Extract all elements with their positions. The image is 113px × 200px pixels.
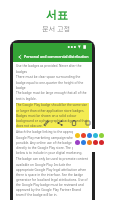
button[interactable]: Share — [55, 118, 64, 127]
button[interactable]: Colour — [99, 140, 104, 145]
staticText: Use the badges as provided. Never alter … — [16, 64, 89, 74]
button[interactable]: Colour — [99, 133, 104, 138]
button[interactable]: Back — [15, 52, 24, 61]
button[interactable]: Highlight — [41, 118, 50, 127]
button[interactable]: Colour — [75, 133, 80, 138]
staticText: The Google Play badge should be the same… — [16, 103, 89, 128]
button[interactable]: Colour — [81, 133, 86, 138]
button[interactable]: Colour — [81, 140, 86, 145]
staticText: 문서 고정 — [42, 24, 71, 33]
staticText: The badge can only be used to promote co… — [16, 157, 89, 197]
button[interactable]: Colour — [75, 140, 80, 145]
staticText: Attach the badge linking to the appropri… — [16, 130, 89, 155]
button[interactable]: Copy — [69, 118, 78, 127]
button[interactable]: Colour — [93, 133, 98, 138]
button[interactable]: Colour — [87, 140, 92, 145]
staticText: The badge must be large enough that all … — [16, 91, 89, 101]
button[interactable]: Colour — [87, 133, 92, 138]
staticText: 서표 — [46, 8, 68, 22]
button[interactable]: Colour — [93, 140, 98, 145]
staticText: Personal and commercial distribution — [24, 54, 89, 59]
staticText: There must be clear space surrounding th… — [16, 75, 89, 90]
button[interactable]: Select all — [83, 118, 92, 127]
